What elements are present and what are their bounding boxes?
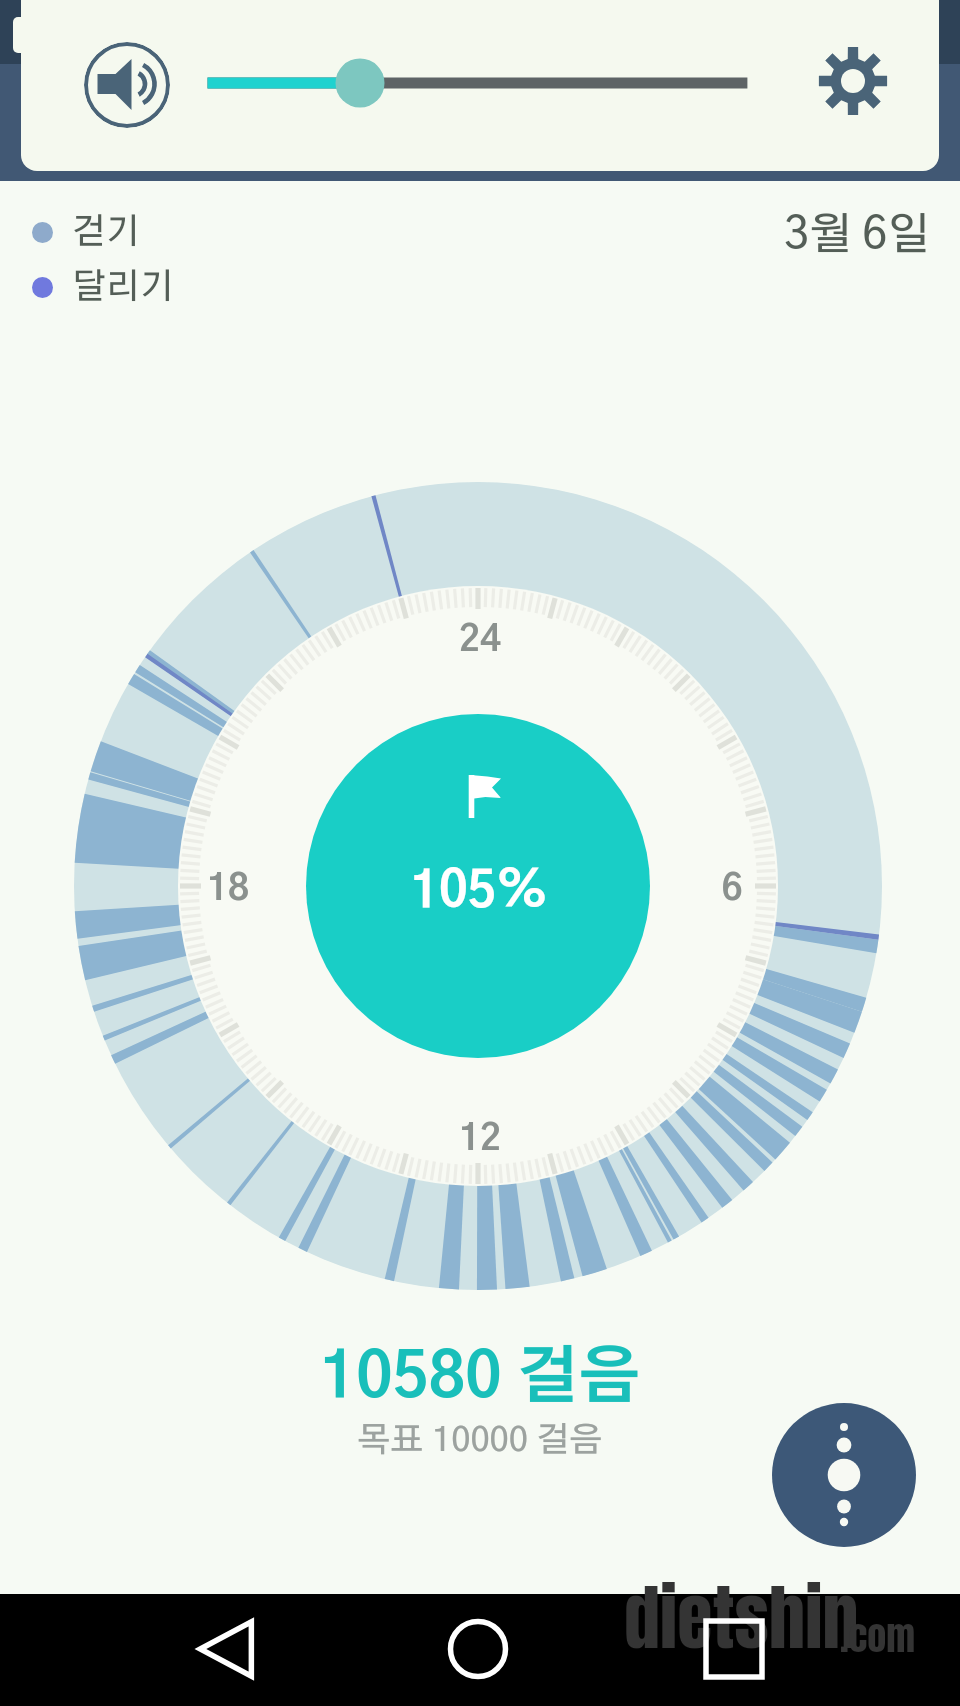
button[interactable]: 달리기	[32, 270, 175, 305]
staticText: 12	[420, 1121, 540, 1157]
button[interactable]: Volume slider	[201, 44, 781, 122]
button[interactable]: Home	[423, 1594, 533, 1704]
button[interactable]: 걷기	[32, 215, 141, 250]
button[interactable]: Mute	[84, 42, 170, 128]
staticText: 걷기	[72, 215, 141, 250]
staticText: 18	[168, 871, 288, 907]
button[interactable]: Recent apps	[679, 1594, 789, 1704]
button[interactable]: More options	[772, 1403, 916, 1547]
staticText: 목표 10000 걸음	[0, 1424, 960, 1458]
staticText: 3월 6일	[600, 214, 930, 258]
staticText: 6	[672, 871, 792, 907]
staticText: 105%	[279, 868, 679, 917]
button[interactable]: Settings	[803, 31, 903, 131]
staticText: 달리기	[72, 270, 175, 305]
staticText: 10580 걸음	[0, 1348, 960, 1410]
staticText: 24	[420, 622, 540, 658]
button[interactable]: Back	[172, 1594, 282, 1704]
staticText: dietshin	[624, 1563, 859, 1671]
staticText: .com	[840, 1607, 916, 1664]
